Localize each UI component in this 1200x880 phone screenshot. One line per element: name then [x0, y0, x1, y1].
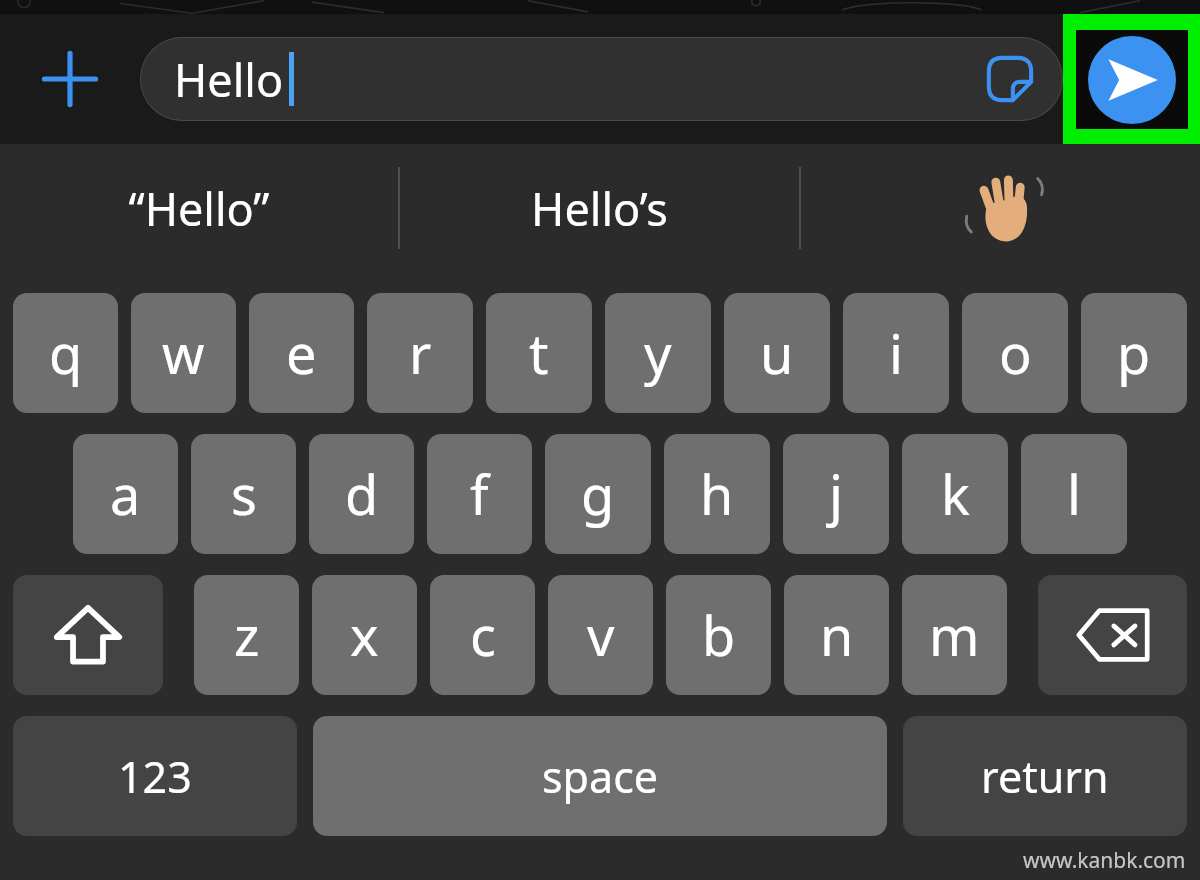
staticText: n [820, 598, 854, 672]
button[interactable]: h [664, 434, 770, 554]
button[interactable]: Backspace [1038, 575, 1187, 695]
staticText: k [941, 457, 970, 531]
button[interactable]: f [427, 434, 532, 554]
button[interactable]: i [843, 293, 949, 413]
staticText: o [999, 316, 1032, 390]
staticText: Hello [174, 49, 284, 110]
staticText: r [409, 316, 432, 390]
button[interactable]: space [313, 716, 887, 836]
button[interactable]: r [367, 293, 473, 413]
staticText: d [345, 457, 379, 531]
staticText: j [829, 457, 843, 531]
button[interactable]: Shift [13, 575, 163, 695]
staticText: s [231, 457, 257, 531]
staticText: space [542, 747, 659, 806]
staticText: p [1117, 316, 1151, 390]
button[interactable]: Hello’s [400, 144, 799, 272]
staticText: m [929, 598, 980, 672]
button[interactable]: x [312, 575, 417, 695]
staticText: b [702, 598, 736, 672]
button[interactable]: t [486, 293, 592, 413]
button[interactable]: j [783, 434, 889, 554]
button[interactable]: k [902, 434, 1008, 554]
button[interactable]: y [605, 293, 711, 413]
staticText: Hello’s [531, 178, 668, 239]
staticText: i [889, 316, 903, 390]
button[interactable]: s [191, 434, 296, 554]
staticText: z [234, 598, 260, 672]
staticText: u [760, 316, 794, 390]
button[interactable]: Send [1088, 36, 1176, 124]
staticText: v [587, 598, 615, 672]
staticText: g [581, 457, 615, 531]
button[interactable]: p [1081, 293, 1187, 413]
staticText: f [470, 457, 489, 531]
button[interactable]: return [903, 716, 1187, 836]
staticText: 123 [118, 747, 192, 806]
button[interactable]: v [548, 575, 653, 695]
button[interactable]: Waving hand emoji [801, 144, 1200, 272]
button[interactable]: m [902, 575, 1007, 695]
button[interactable]: z [194, 575, 299, 695]
button[interactable]: c [430, 575, 535, 695]
staticText: “Hello” [128, 178, 270, 239]
staticText: c [470, 598, 496, 672]
staticText: q [49, 316, 83, 390]
button[interactable]: d [309, 434, 414, 554]
button[interactable]: n [784, 575, 889, 695]
staticText: return [981, 747, 1109, 806]
staticText: x [350, 598, 379, 672]
staticText: h [700, 457, 734, 531]
staticText: l [1067, 457, 1081, 531]
staticText: w [162, 316, 205, 390]
button[interactable]: a [73, 434, 178, 554]
staticText: y [644, 316, 672, 390]
button[interactable]: “Hello” [0, 144, 398, 272]
staticText: t [529, 316, 549, 390]
button[interactable]: g [545, 434, 651, 554]
button[interactable]: w [131, 293, 236, 413]
button[interactable]: e [249, 293, 354, 413]
button[interactable]: q [13, 293, 118, 413]
button[interactable]: b [666, 575, 771, 695]
staticText: a [110, 457, 141, 531]
button[interactable]: o [962, 293, 1068, 413]
staticText: www.kanbk.com [1023, 846, 1186, 875]
button[interactable]: u [724, 293, 830, 413]
button[interactable]: l [1021, 434, 1127, 554]
staticText: e [286, 316, 317, 390]
button[interactable]: 123 [13, 716, 297, 836]
button[interactable]: Add attachment [0, 14, 140, 144]
button[interactable]: Stickers [983, 52, 1037, 106]
button[interactable]: Hello [140, 37, 1063, 121]
